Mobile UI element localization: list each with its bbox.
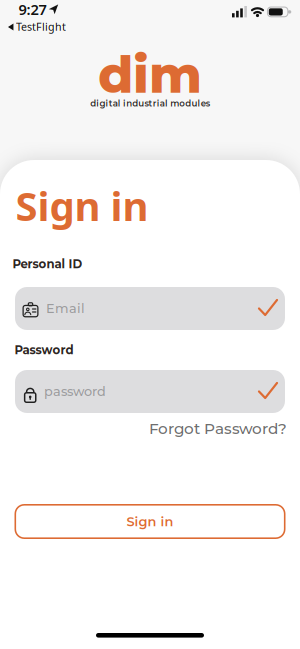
staticText: Sign in bbox=[15, 179, 148, 232]
staticText: password bbox=[44, 384, 106, 399]
button[interactable]: Forgot Password? bbox=[149, 419, 287, 438]
staticText: Personal ID bbox=[12, 257, 82, 271]
staticText: Sign in bbox=[126, 514, 173, 529]
staticText: dim bbox=[98, 44, 202, 105]
staticText: Forgot Password? bbox=[149, 419, 287, 438]
staticText: 9:27 bbox=[18, 0, 46, 19]
staticText: digital industrial modules bbox=[90, 98, 210, 109]
staticText: Password bbox=[14, 343, 73, 357]
button[interactable]: Password bbox=[15, 370, 285, 413]
button[interactable]: Sign in bbox=[14, 504, 285, 539]
staticText: Email bbox=[46, 301, 85, 316]
staticText: TestFlight bbox=[16, 19, 66, 34]
button[interactable]: Email bbox=[15, 287, 285, 330]
